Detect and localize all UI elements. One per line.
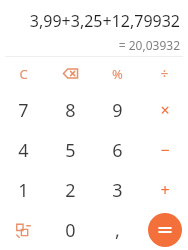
button[interactable]: Unit converter (0, 210, 47, 250)
button[interactable]: C (0, 57, 47, 90)
button[interactable]: × (141, 90, 188, 130)
staticText: − (160, 139, 170, 161)
button[interactable]: 7 (0, 90, 47, 130)
button[interactable]: 6 (94, 130, 141, 170)
staticText: 3,99+3,25+12,79932 (29, 10, 180, 32)
button[interactable]: 5 (47, 130, 94, 170)
staticText: ÷ (160, 64, 169, 83)
staticText: 2 (65, 178, 76, 203)
staticText: C (19, 65, 28, 83)
button[interactable]: 0 (47, 210, 94, 250)
staticText: 5 (65, 138, 76, 163)
button[interactable]: Backspace (47, 57, 94, 90)
staticText: 9 (112, 98, 123, 123)
button[interactable]: 4 (0, 130, 47, 170)
staticText: , (115, 218, 120, 243)
button[interactable]: 9 (94, 90, 141, 130)
staticText: % (112, 65, 123, 83)
button[interactable]: + (141, 170, 188, 210)
staticText: 6 (112, 138, 123, 163)
button[interactable]: Equals (148, 213, 182, 247)
staticText: 4 (18, 138, 29, 163)
button[interactable]: % (94, 57, 141, 90)
staticText: 0 (65, 218, 76, 243)
button[interactable]: 1 (0, 170, 47, 210)
staticText: + (160, 179, 170, 201)
button[interactable]: ÷ (141, 57, 188, 90)
button[interactable]: 3 (94, 170, 141, 210)
button[interactable]: − (141, 130, 188, 170)
button[interactable]: 8 (47, 90, 94, 130)
staticText: = 20,03932 (118, 37, 180, 53)
button[interactable]: , (94, 210, 141, 250)
staticText: 8 (65, 98, 76, 123)
staticText: 3 (112, 178, 123, 203)
staticText: 7 (18, 98, 29, 123)
staticText: × (160, 99, 170, 121)
staticText: 1 (18, 178, 29, 203)
button[interactable]: 2 (47, 170, 94, 210)
